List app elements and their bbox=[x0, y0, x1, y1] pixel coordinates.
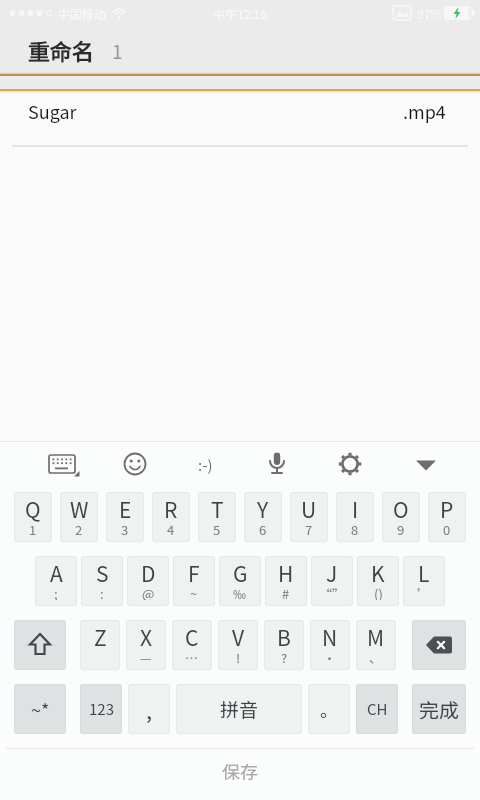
staticText: D bbox=[141, 558, 156, 588]
staticText: 中午12:16 bbox=[213, 5, 267, 22]
staticText: Y bbox=[257, 494, 269, 524]
button[interactable]: T bbox=[198, 492, 236, 542]
button[interactable]: Y bbox=[244, 492, 282, 542]
staticText: 1 bbox=[29, 520, 37, 536]
staticText: 6 bbox=[259, 520, 267, 536]
staticText: 、 bbox=[369, 648, 383, 664]
button[interactable]: G bbox=[219, 556, 261, 606]
staticText: ~* bbox=[31, 696, 50, 722]
button[interactable]: S bbox=[81, 556, 123, 606]
staticText: O bbox=[393, 494, 409, 524]
button[interactable] bbox=[14, 620, 66, 670]
button[interactable] bbox=[40, 446, 84, 484]
staticText: T bbox=[211, 494, 224, 524]
button[interactable]: B bbox=[264, 620, 304, 670]
staticText: G bbox=[233, 558, 248, 588]
staticText: Q bbox=[25, 494, 41, 524]
staticText: 5 bbox=[213, 520, 221, 536]
staticText: N bbox=[322, 622, 338, 652]
staticText: .mp4 bbox=[403, 98, 446, 124]
staticText: 97% bbox=[417, 5, 442, 22]
button[interactable]: H bbox=[265, 556, 307, 606]
staticText: ’ bbox=[417, 584, 431, 600]
button[interactable]: J bbox=[311, 556, 353, 606]
staticText: H bbox=[278, 558, 294, 588]
staticText: 完成 bbox=[419, 695, 459, 724]
staticText: — bbox=[140, 648, 152, 664]
button[interactable]: ~* bbox=[14, 684, 66, 734]
button[interactable]: U bbox=[290, 492, 328, 542]
button[interactable]: P bbox=[428, 492, 466, 542]
staticText: CH bbox=[367, 698, 388, 720]
staticText: U bbox=[301, 494, 317, 524]
button[interactable]: F bbox=[173, 556, 215, 606]
staticText: 9 bbox=[397, 520, 405, 536]
staticText: 123 bbox=[89, 698, 114, 720]
button[interactable]: N bbox=[310, 620, 350, 670]
staticText: # bbox=[282, 584, 290, 600]
button[interactable]: C bbox=[172, 620, 212, 670]
staticText: P bbox=[440, 494, 454, 524]
staticText: A bbox=[50, 558, 63, 588]
staticText: R bbox=[164, 494, 178, 524]
button[interactable]: I bbox=[336, 492, 374, 542]
staticText: S bbox=[96, 558, 109, 588]
button[interactable]: 保存 bbox=[0, 749, 480, 793]
staticText: ‰ bbox=[233, 584, 247, 600]
staticText: I bbox=[352, 494, 359, 524]
button[interactable] bbox=[412, 620, 466, 670]
button[interactable]: 。 bbox=[308, 684, 350, 734]
button[interactable]: Z bbox=[80, 620, 120, 670]
button[interactable]: W bbox=[60, 492, 98, 542]
staticText: 1 bbox=[112, 37, 123, 65]
button[interactable] bbox=[113, 446, 157, 484]
staticText: () bbox=[374, 584, 383, 600]
button[interactable]: 拼音 bbox=[176, 684, 302, 734]
staticText: K bbox=[371, 558, 385, 588]
staticText: : bbox=[100, 584, 104, 600]
button[interactable]: K bbox=[357, 556, 399, 606]
staticText: 保存 bbox=[222, 758, 258, 784]
button[interactable]: L bbox=[403, 556, 445, 606]
button[interactable]: Q bbox=[14, 492, 52, 542]
button[interactable]: R bbox=[152, 492, 190, 542]
button[interactable]: Sugar bbox=[28, 88, 446, 134]
staticText: “” bbox=[319, 584, 346, 600]
button[interactable]: 123 bbox=[80, 684, 122, 734]
staticText: 0 bbox=[443, 520, 451, 536]
button[interactable] bbox=[255, 446, 299, 484]
staticText: V bbox=[232, 622, 245, 652]
button[interactable]: , bbox=[128, 684, 170, 734]
staticText: E bbox=[119, 494, 132, 524]
staticText: F bbox=[188, 558, 200, 588]
button[interactable] bbox=[328, 446, 372, 484]
button[interactable] bbox=[404, 446, 448, 484]
staticText: 3 bbox=[121, 520, 129, 536]
button[interactable]: V bbox=[218, 620, 258, 670]
staticText: :-) bbox=[198, 454, 213, 476]
staticText: B bbox=[277, 622, 291, 652]
staticText: Sugar bbox=[28, 98, 77, 124]
staticText: ! bbox=[236, 648, 241, 664]
button[interactable]: M bbox=[356, 620, 396, 670]
button[interactable]: X bbox=[126, 620, 166, 670]
staticText: 拼音 bbox=[220, 695, 259, 723]
staticText: W bbox=[70, 494, 89, 524]
staticText: @ bbox=[142, 584, 155, 600]
staticText: X bbox=[140, 622, 153, 652]
staticText: 7 bbox=[305, 520, 313, 536]
staticText: ; bbox=[54, 584, 58, 600]
staticText: , bbox=[146, 693, 153, 725]
button[interactable]: 完成 bbox=[412, 684, 466, 734]
button[interactable]: CH bbox=[356, 684, 398, 734]
button[interactable]: E bbox=[106, 492, 144, 542]
staticText: · bbox=[323, 648, 337, 664]
button[interactable]: :-) bbox=[183, 446, 227, 484]
staticText: 中国移动 bbox=[58, 5, 107, 22]
button[interactable]: A bbox=[35, 556, 77, 606]
button[interactable]: D bbox=[127, 556, 169, 606]
staticText: 2 bbox=[75, 520, 83, 536]
button[interactable]: O bbox=[382, 492, 420, 542]
staticText: ? bbox=[281, 648, 288, 664]
